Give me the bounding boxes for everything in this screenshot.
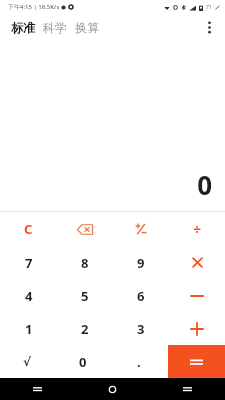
staticText: 0: [79, 353, 87, 371]
staticText: 2: [81, 320, 89, 338]
button[interactable]: Back: [0, 378, 75, 400]
button[interactable]: Equals: [168, 345, 225, 378]
button[interactable]: 9: [113, 246, 169, 279]
button[interactable]: Backspace: [57, 212, 113, 246]
staticText: 下午4:15 | 18.5K/s: [8, 3, 60, 11]
button[interactable]: 4: [0, 279, 57, 312]
button[interactable]: 3: [113, 312, 169, 345]
button[interactable]: 7: [0, 246, 57, 279]
button[interactable]: √: [0, 345, 55, 378]
button[interactable]: 1: [0, 312, 57, 345]
button[interactable]: 6: [113, 279, 169, 312]
button[interactable]: ÷: [169, 212, 225, 246]
staticText: 0: [197, 167, 212, 202]
staticText: ÷: [193, 220, 202, 239]
staticText: 标准: [11, 20, 35, 35]
button[interactable]: 换算: [74, 17, 100, 38]
staticText: 6: [137, 287, 145, 305]
staticText: 71: [206, 4, 212, 11]
button[interactable]: 8: [57, 246, 113, 279]
button[interactable]: 5: [57, 279, 113, 312]
button[interactable]: Plus minus: [113, 212, 169, 246]
staticText: √: [23, 355, 32, 369]
staticText: 科学: [43, 20, 67, 35]
staticText: 8: [81, 254, 89, 272]
staticText: 3: [137, 320, 145, 338]
staticText: 5: [81, 287, 89, 305]
staticText: C: [24, 220, 33, 238]
staticText: 换算: [75, 20, 99, 35]
staticText: .: [137, 353, 141, 371]
button[interactable]: 科学: [42, 17, 68, 38]
button[interactable]: 2: [57, 312, 113, 345]
button[interactable]: Multiply: [169, 246, 225, 279]
button[interactable]: Minus: [169, 279, 225, 312]
button[interactable]: C: [0, 212, 57, 246]
button[interactable]: 0: [55, 345, 111, 378]
staticText: 7: [25, 254, 33, 272]
button[interactable]: 标准: [10, 17, 36, 38]
button[interactable]: .: [111, 345, 167, 378]
staticText: 9: [137, 254, 145, 272]
staticText: 1: [25, 320, 33, 338]
button[interactable]: Recent apps: [150, 378, 225, 400]
button[interactable]: Plus: [169, 312, 225, 345]
button[interactable]: Home: [75, 378, 150, 400]
button[interactable]: More options: [197, 15, 221, 39]
staticText: 4: [25, 287, 33, 305]
